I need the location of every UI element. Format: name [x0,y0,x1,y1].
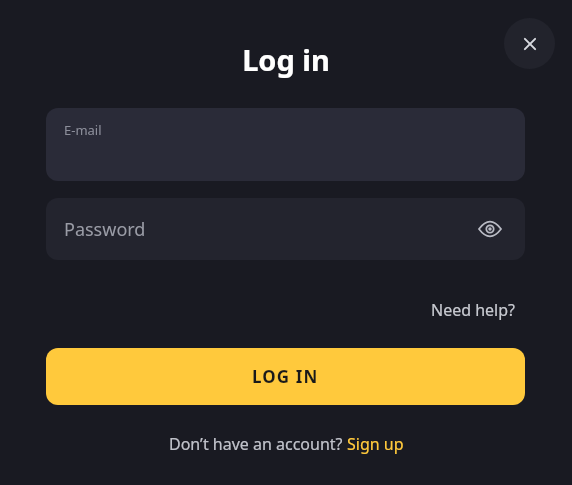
button[interactable]: E-mail [46,108,525,181]
staticText: Log in [0,40,572,79]
button[interactable]: Password [46,198,525,260]
staticText: Don’t have an account? [169,433,347,455]
staticText: Password [64,217,146,242]
button[interactable]: Show password [473,212,507,246]
button[interactable]: Close [504,18,555,69]
staticText: LOG IN [252,365,319,388]
button[interactable]: Need help? [425,296,522,324]
button[interactable]: LOG IN [46,348,525,405]
button[interactable]: Sign up [347,433,404,455]
staticText: Sign up [347,433,404,455]
staticText: Need help? [431,299,516,321]
staticText: E-mail [64,121,102,139]
